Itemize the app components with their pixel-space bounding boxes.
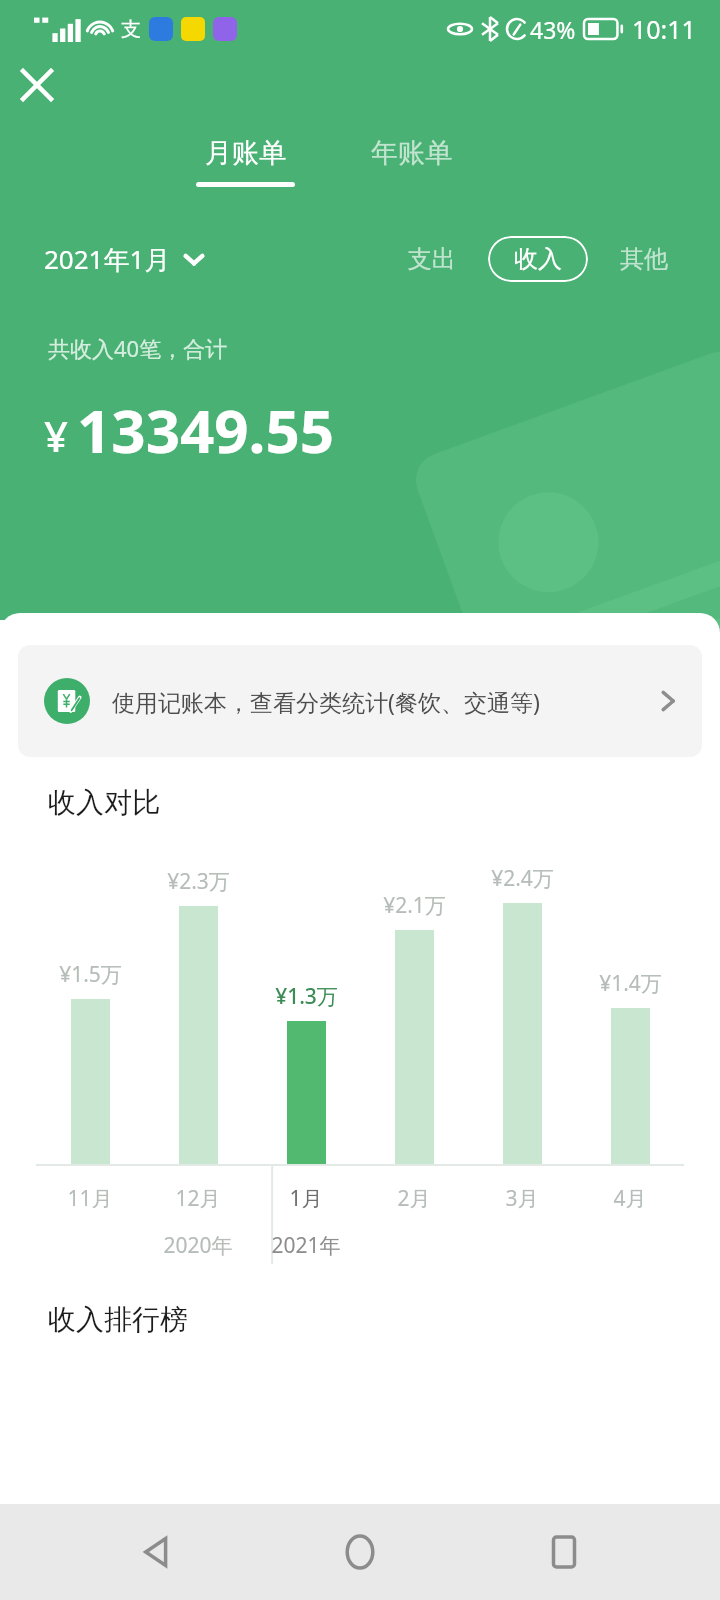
button[interactable]: ¥1.4万 (576, 969, 684, 1164)
staticText: ¥2.3万 (167, 867, 230, 896)
staticText: ¥1.4万 (599, 969, 662, 998)
staticText: 使用记账本，查看分类统计(餐饮、交通等) (112, 686, 644, 717)
button[interactable]: Home (312, 1504, 408, 1600)
staticText: 其他 (620, 244, 668, 274)
staticText: 支 (121, 17, 141, 42)
button[interactable]: 月账单 (190, 136, 301, 187)
staticText: 12月 (144, 1184, 252, 1213)
staticText: 4月 (576, 1184, 684, 1213)
staticText: 2020年 (144, 1231, 252, 1260)
staticText: 3月 (468, 1184, 576, 1213)
staticText: 1月 (252, 1184, 360, 1213)
staticText: 年账单 (371, 136, 452, 170)
staticText: 收入对比 (48, 785, 160, 820)
staticText: ¥1.5万 (59, 960, 122, 989)
button[interactable]: ¥1.3万 (252, 982, 360, 1164)
button[interactable]: Close (10, 58, 64, 112)
button[interactable]: ¥1.5万 (36, 960, 144, 1164)
button[interactable]: 年账单 (365, 136, 458, 170)
button[interactable]: Back (108, 1504, 204, 1600)
button[interactable]: 使用记账本，查看分类统计(餐饮、交通等) (18, 645, 702, 757)
staticText: 共收入40笔，合计 (48, 333, 228, 363)
button[interactable]: ¥2.4万 (468, 864, 576, 1164)
staticText: ¥1.3万 (275, 982, 338, 1011)
staticText: 10:11 (632, 12, 696, 46)
button[interactable]: Recents (516, 1504, 612, 1600)
button[interactable]: 收入 (488, 236, 588, 282)
button[interactable]: 2021年1月 (44, 235, 205, 283)
staticText: 11月 (36, 1184, 144, 1213)
staticText: 支出 (408, 244, 456, 274)
button[interactable]: ¥2.1万 (360, 891, 468, 1164)
staticText: 2021年 (252, 1231, 360, 1260)
button[interactable]: ¥2.3万 (144, 867, 252, 1164)
staticText: 13349.55 (77, 389, 335, 471)
staticText: ¥2.1万 (383, 891, 446, 920)
staticText: 43% (530, 14, 576, 45)
staticText: 收入 (514, 244, 562, 274)
button[interactable]: 支出 (400, 236, 464, 282)
staticText: ¥ (44, 407, 69, 464)
staticText: 2月 (360, 1184, 468, 1213)
staticText: 月账单 (205, 136, 286, 170)
staticText: ¥2.4万 (491, 864, 554, 893)
button[interactable]: 其他 (612, 236, 676, 282)
staticText: 2021年1月 (44, 241, 171, 277)
staticText: 收入排行榜 (48, 1302, 188, 1337)
